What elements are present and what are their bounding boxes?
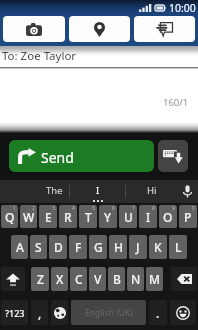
button[interactable]: Messages bbox=[134, 16, 195, 42]
staticText: The bbox=[46, 184, 63, 197]
button[interactable]: Backspace bbox=[171, 267, 197, 291]
button[interactable]: ?123 bbox=[1, 300, 28, 325]
staticText: M bbox=[149, 271, 161, 287]
button[interactable]: F bbox=[69, 235, 87, 259]
button[interactable]: , bbox=[31, 300, 48, 325]
staticText: V bbox=[94, 271, 102, 287]
button[interactable]: H bbox=[109, 235, 127, 259]
staticText: I bbox=[146, 209, 151, 225]
staticText: R bbox=[64, 209, 72, 225]
staticText: 4 bbox=[72, 205, 75, 212]
button[interactable]: The bbox=[0, 180, 69, 203]
staticText: E bbox=[45, 209, 52, 225]
staticText: F bbox=[75, 239, 82, 255]
staticText: 3 bbox=[52, 205, 55, 212]
staticText: D bbox=[54, 239, 63, 255]
button[interactable]: Camera bbox=[3, 16, 65, 42]
button[interactable]: A bbox=[11, 235, 28, 259]
staticText: 0 bbox=[192, 205, 195, 212]
staticText: K bbox=[154, 239, 162, 255]
staticText: C bbox=[75, 271, 83, 287]
button[interactable]: I bbox=[70, 180, 125, 203]
button[interactable]: Emoji bbox=[170, 300, 196, 325]
staticText: P bbox=[184, 209, 192, 225]
staticText: To: Zoe Taylor bbox=[2, 48, 77, 64]
staticText: 8 bbox=[152, 205, 155, 212]
button[interactable]: Q bbox=[1, 205, 18, 228]
button[interactable]: E bbox=[39, 205, 57, 228]
staticText: English (UK) bbox=[85, 307, 133, 319]
staticText: H bbox=[114, 239, 123, 255]
staticText: 10:00 bbox=[169, 1, 196, 15]
staticText: S bbox=[35, 239, 42, 255]
button[interactable]: L bbox=[169, 235, 187, 259]
staticText: 1 bbox=[13, 205, 16, 212]
button[interactable]: S bbox=[30, 235, 47, 259]
button[interactable]: C bbox=[70, 267, 87, 291]
button[interactable]: Hide keyboard bbox=[158, 140, 188, 172]
button[interactable]: V bbox=[89, 267, 106, 291]
staticText: U bbox=[124, 209, 133, 225]
staticText: X bbox=[56, 271, 64, 287]
staticText: A bbox=[16, 239, 24, 255]
staticText: T bbox=[85, 209, 92, 225]
button[interactable]: Voice input bbox=[177, 180, 198, 203]
staticText: ?123 bbox=[5, 307, 25, 319]
button[interactable]: B bbox=[108, 267, 125, 291]
button[interactable]: N bbox=[127, 267, 144, 291]
staticText: Q bbox=[5, 209, 15, 225]
staticText: W bbox=[23, 209, 35, 225]
staticText: O bbox=[163, 209, 173, 225]
button[interactable]: Hi bbox=[126, 180, 177, 203]
button[interactable]: . bbox=[149, 300, 167, 325]
staticText: 5 bbox=[92, 205, 95, 212]
staticText: . bbox=[156, 305, 160, 321]
staticText: 160/1 bbox=[163, 96, 189, 109]
button[interactable]: I bbox=[139, 205, 157, 228]
button[interactable]: Y bbox=[99, 205, 117, 228]
button[interactable]: Location bbox=[69, 16, 130, 42]
button[interactable]: P bbox=[179, 205, 197, 228]
staticText: 6 bbox=[112, 205, 115, 212]
staticText: I bbox=[96, 184, 100, 197]
button[interactable]: U bbox=[119, 205, 137, 228]
staticText: , bbox=[38, 305, 42, 321]
staticText: Hi bbox=[147, 184, 157, 197]
staticText: L bbox=[175, 239, 182, 255]
staticText: 7 bbox=[132, 205, 135, 212]
staticText: 9 bbox=[172, 205, 175, 212]
button[interactable]: Shift bbox=[1, 267, 25, 291]
button[interactable]: English (UK) bbox=[71, 300, 146, 325]
staticText: Send bbox=[41, 148, 74, 167]
staticText: 2 bbox=[32, 205, 35, 212]
button[interactable]: Change language bbox=[51, 300, 68, 325]
staticText: B bbox=[113, 271, 121, 287]
button[interactable]: O bbox=[159, 205, 177, 228]
button[interactable]: M bbox=[146, 267, 163, 291]
button[interactable]: R bbox=[59, 205, 77, 228]
button[interactable]: D bbox=[49, 235, 67, 259]
staticText: G bbox=[94, 239, 103, 255]
button[interactable]: K bbox=[149, 235, 167, 259]
button[interactable]: W bbox=[20, 205, 37, 228]
staticText: Y bbox=[104, 209, 112, 225]
button[interactable]: Z bbox=[31, 267, 49, 291]
button[interactable]: G bbox=[89, 235, 107, 259]
button[interactable]: J bbox=[129, 235, 147, 259]
button[interactable]: T bbox=[79, 205, 97, 228]
staticText: Z bbox=[37, 271, 44, 287]
staticText: J bbox=[136, 239, 140, 255]
staticText: N bbox=[131, 271, 141, 287]
button[interactable]: X bbox=[51, 267, 68, 291]
button[interactable]: Send bbox=[9, 140, 154, 172]
